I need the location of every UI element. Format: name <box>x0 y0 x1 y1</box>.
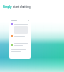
staticText: start chatting <box>13 5 31 8</box>
button[interactable] <box>9 13 31 59</box>
staticText: Simply <box>3 5 13 8</box>
